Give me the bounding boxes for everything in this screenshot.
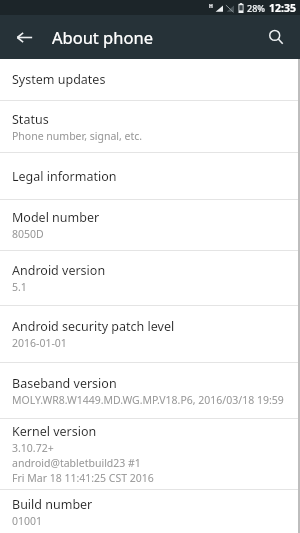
staticText: android@tabletbuild23 #1 [12,456,141,470]
staticText: MOLY.WR8.W1449.MD.WG.MP.V18.P6, 2016/03/… [12,393,284,407]
button[interactable]: Baseband version [0,363,300,418]
staticText: Fri Mar 18 11:41:25 CST 2016 [12,471,154,485]
staticText: 8050D [12,227,44,241]
button[interactable]: Search [260,21,292,53]
staticText: 3.10.72+ [12,441,54,455]
button[interactable]: Status [0,101,300,152]
staticText: About phone [52,26,153,48]
staticText: System updates [12,71,106,88]
staticText: 28% [247,2,265,14]
staticText: Phone number, signal, etc. [12,129,143,143]
staticText: 5.1 [12,280,27,294]
button[interactable]: Android version [0,251,300,305]
staticText: Status [12,111,49,128]
staticText: Android version [12,262,106,279]
staticText: 12:35 [269,1,296,15]
staticText: Build number [12,496,93,513]
staticText: Model number [12,209,100,226]
button[interactable]: Model number [0,200,300,250]
button[interactable]: Back [8,21,40,53]
staticText: 01001 [12,514,43,528]
staticText: Legal information [12,168,117,185]
staticText: H [209,3,213,10]
button[interactable]: Build number [0,490,300,533]
button[interactable]: System updates [0,59,300,100]
button[interactable]: Android security patch level [0,306,300,362]
staticText: Kernel version [12,423,97,440]
staticText: 2016-01-01 [12,336,67,350]
staticText: Baseband version [12,375,117,392]
button[interactable]: Kernel version [0,419,300,489]
button[interactable]: Legal information [0,153,300,199]
staticText: Android security patch level [12,318,175,335]
